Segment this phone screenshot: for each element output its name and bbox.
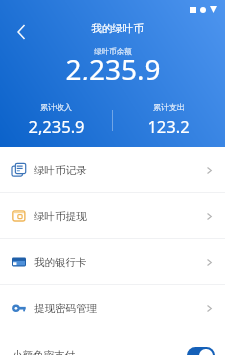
staticText: 我的绿叶币 bbox=[91, 22, 144, 35]
staticText: 提现密码管理 bbox=[34, 302, 97, 315]
staticText: 累计支出 bbox=[153, 102, 185, 112]
button[interactable]: 我的银行卡 bbox=[0, 239, 225, 285]
staticText: 2,235.9 bbox=[28, 115, 85, 136]
staticText: 123.2 bbox=[147, 115, 190, 136]
button[interactable]: 提现密码管理 bbox=[0, 285, 225, 331]
staticText: 2,235.9 bbox=[65, 50, 161, 80]
staticText: 我的银行卡 bbox=[34, 256, 87, 269]
staticText: 累计收入 bbox=[40, 102, 72, 112]
button[interactable]: 绿叶币提现 bbox=[0, 193, 225, 239]
button[interactable]: Back bbox=[6, 16, 38, 48]
staticText: 绿叶币记录 bbox=[34, 164, 87, 177]
staticText: 小额免密支付 bbox=[12, 349, 75, 355]
button[interactable]: 绿叶币记录 bbox=[0, 147, 225, 193]
staticText: 绿叶币提现 bbox=[34, 210, 87, 223]
button[interactable]: 小额免密支付 bbox=[0, 315, 225, 355]
staticText: 绿叶币余额 bbox=[94, 47, 132, 56]
